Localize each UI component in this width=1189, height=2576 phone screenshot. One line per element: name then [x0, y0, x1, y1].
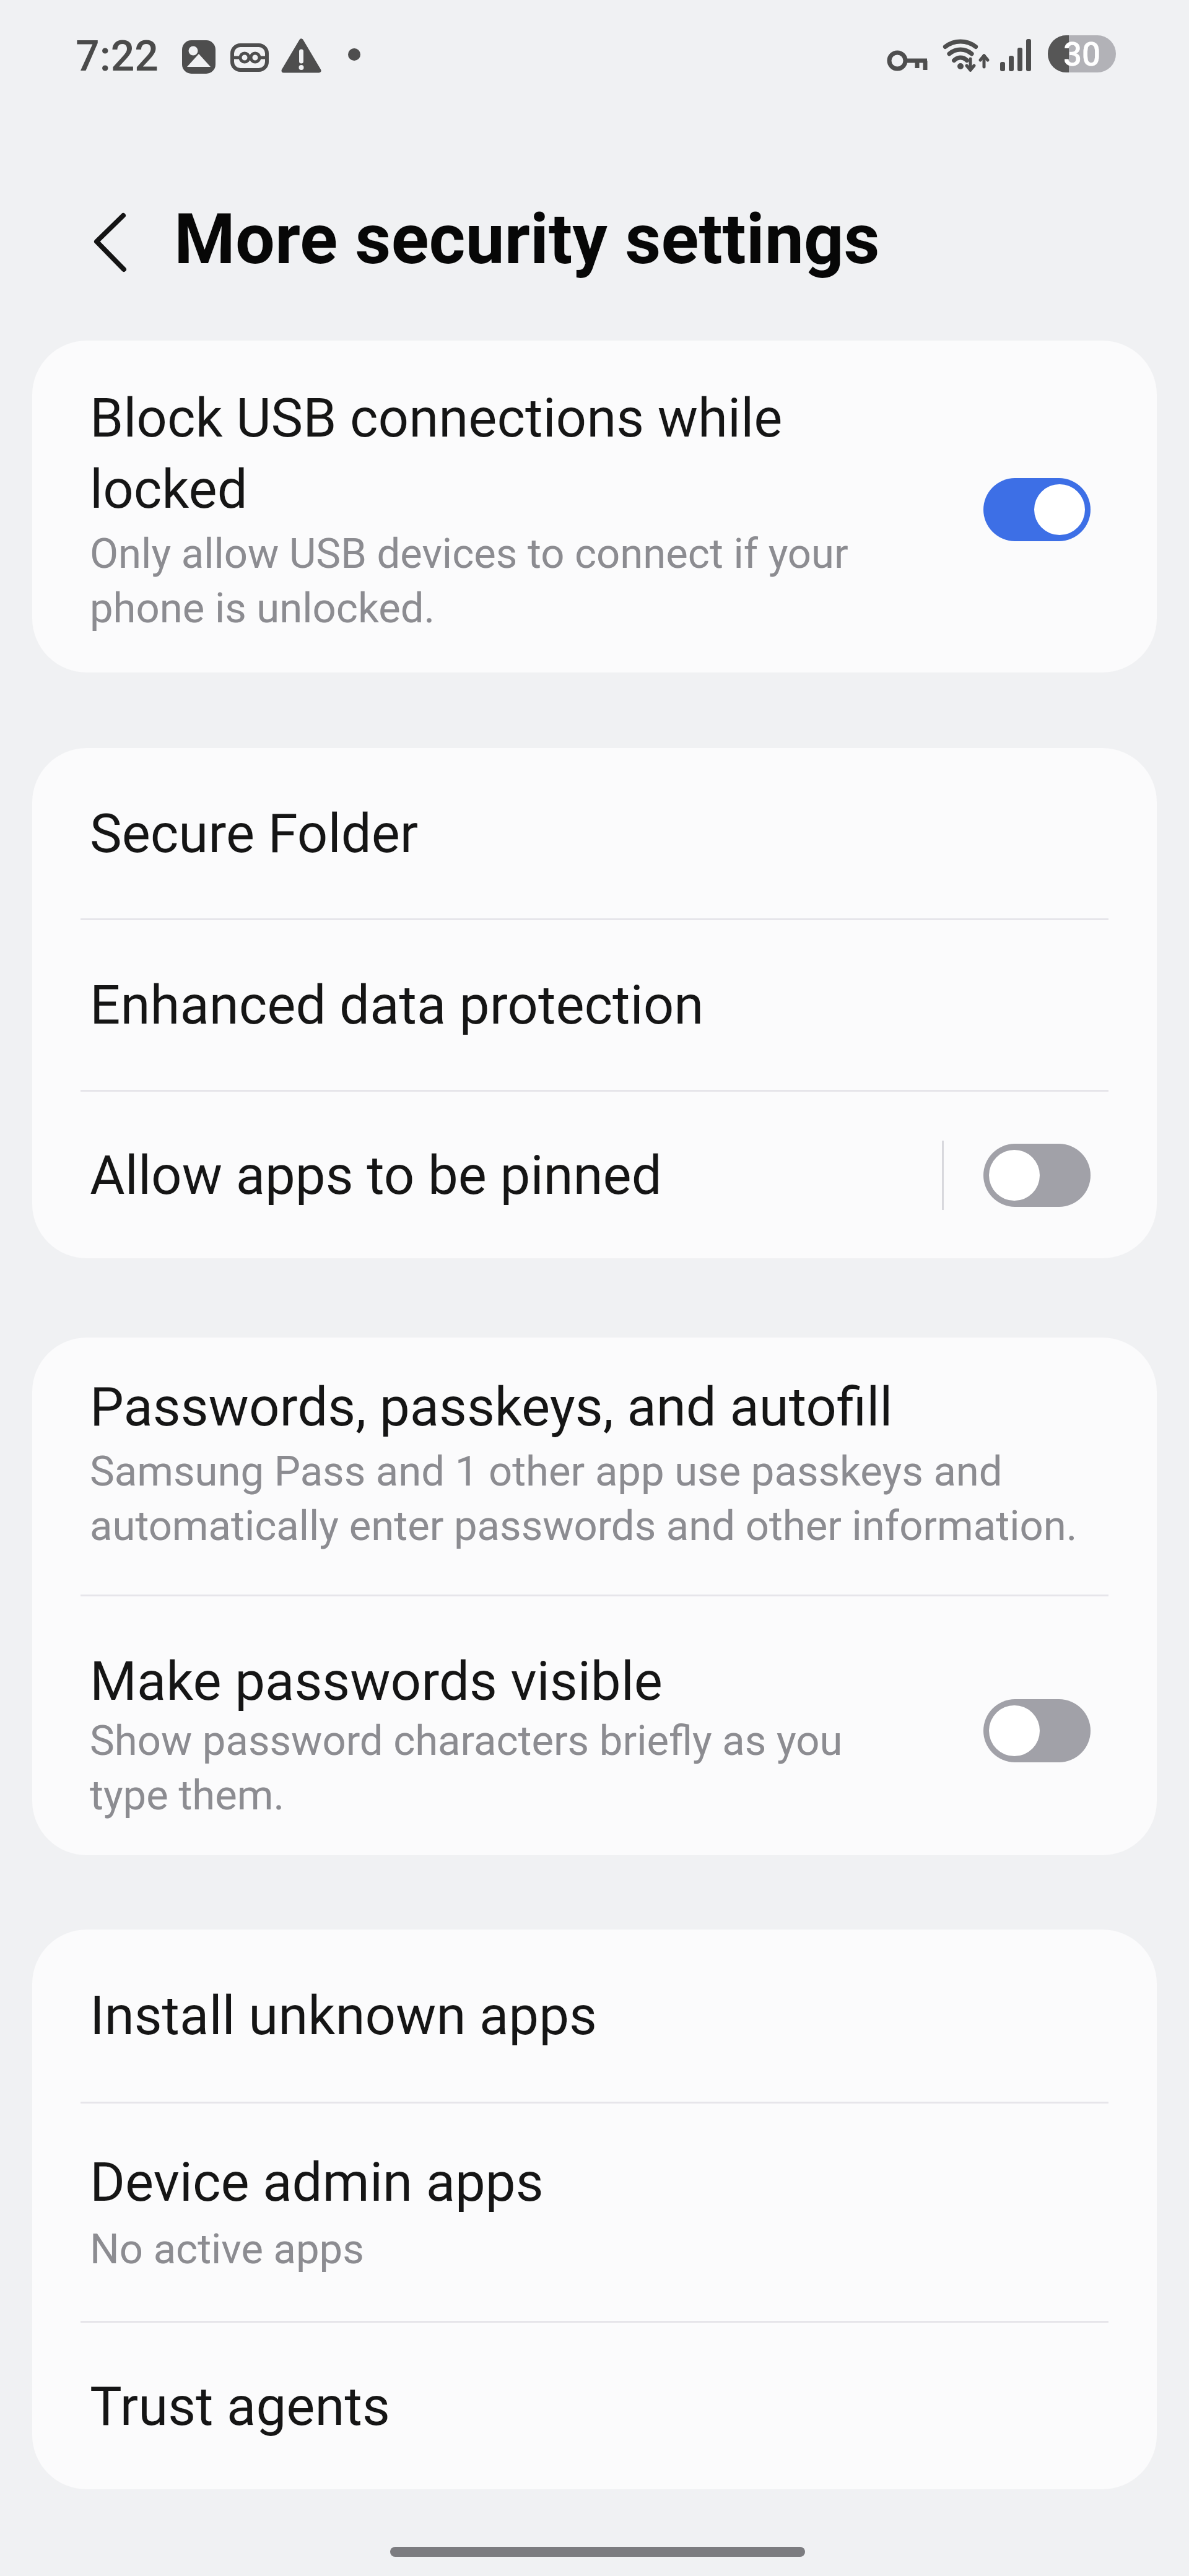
- button[interactable]: Secure Folder: [32, 748, 1157, 918]
- staticText: Samsung Pass and 1 other app use passkey…: [90, 1447, 1078, 1550]
- staticText: 30: [1063, 35, 1101, 72]
- button[interactable]: [983, 1699, 1091, 1762]
- staticText: More security settings: [174, 198, 880, 280]
- button[interactable]: Block USB connections while locked: [32, 341, 1157, 672]
- staticText: Enhanced data protection: [90, 973, 704, 1037]
- staticText: Make passwords visible: [90, 1650, 663, 1713]
- button[interactable]: Passwords, passkeys, and autofill: [32, 1338, 1157, 1595]
- staticText: Secure Folder: [90, 802, 419, 865]
- button[interactable]: [983, 478, 1091, 541]
- staticText: Trust agents: [90, 2375, 390, 2438]
- button[interactable]: [983, 1144, 1091, 1207]
- button[interactable]: Device admin apps: [32, 2104, 1157, 2321]
- staticText: Device admin apps: [90, 2151, 544, 2214]
- button[interactable]: Install unknown apps: [32, 1930, 1157, 2102]
- button[interactable]: Allow apps to be pinned: [32, 1092, 1157, 1258]
- staticText: Only allow USB devices to connect if you…: [90, 529, 848, 632]
- staticText: 7:22: [76, 32, 159, 81]
- staticText: Install unknown apps: [90, 1984, 597, 2047]
- staticText: Passwords, passkeys, and autofill: [90, 1375, 893, 1438]
- staticText: Block USB connections while locked: [90, 386, 783, 521]
- button[interactable]: [74, 199, 149, 286]
- button[interactable]: Enhanced data protection: [32, 920, 1157, 1090]
- button[interactable]: Make passwords visible: [32, 1596, 1157, 1855]
- button[interactable]: Trust agents: [32, 2323, 1157, 2489]
- staticText: No active apps: [90, 2225, 364, 2274]
- staticText: Allow apps to be pinned: [90, 1144, 662, 1207]
- staticText: Show password characters briefly as you …: [90, 1717, 843, 1819]
